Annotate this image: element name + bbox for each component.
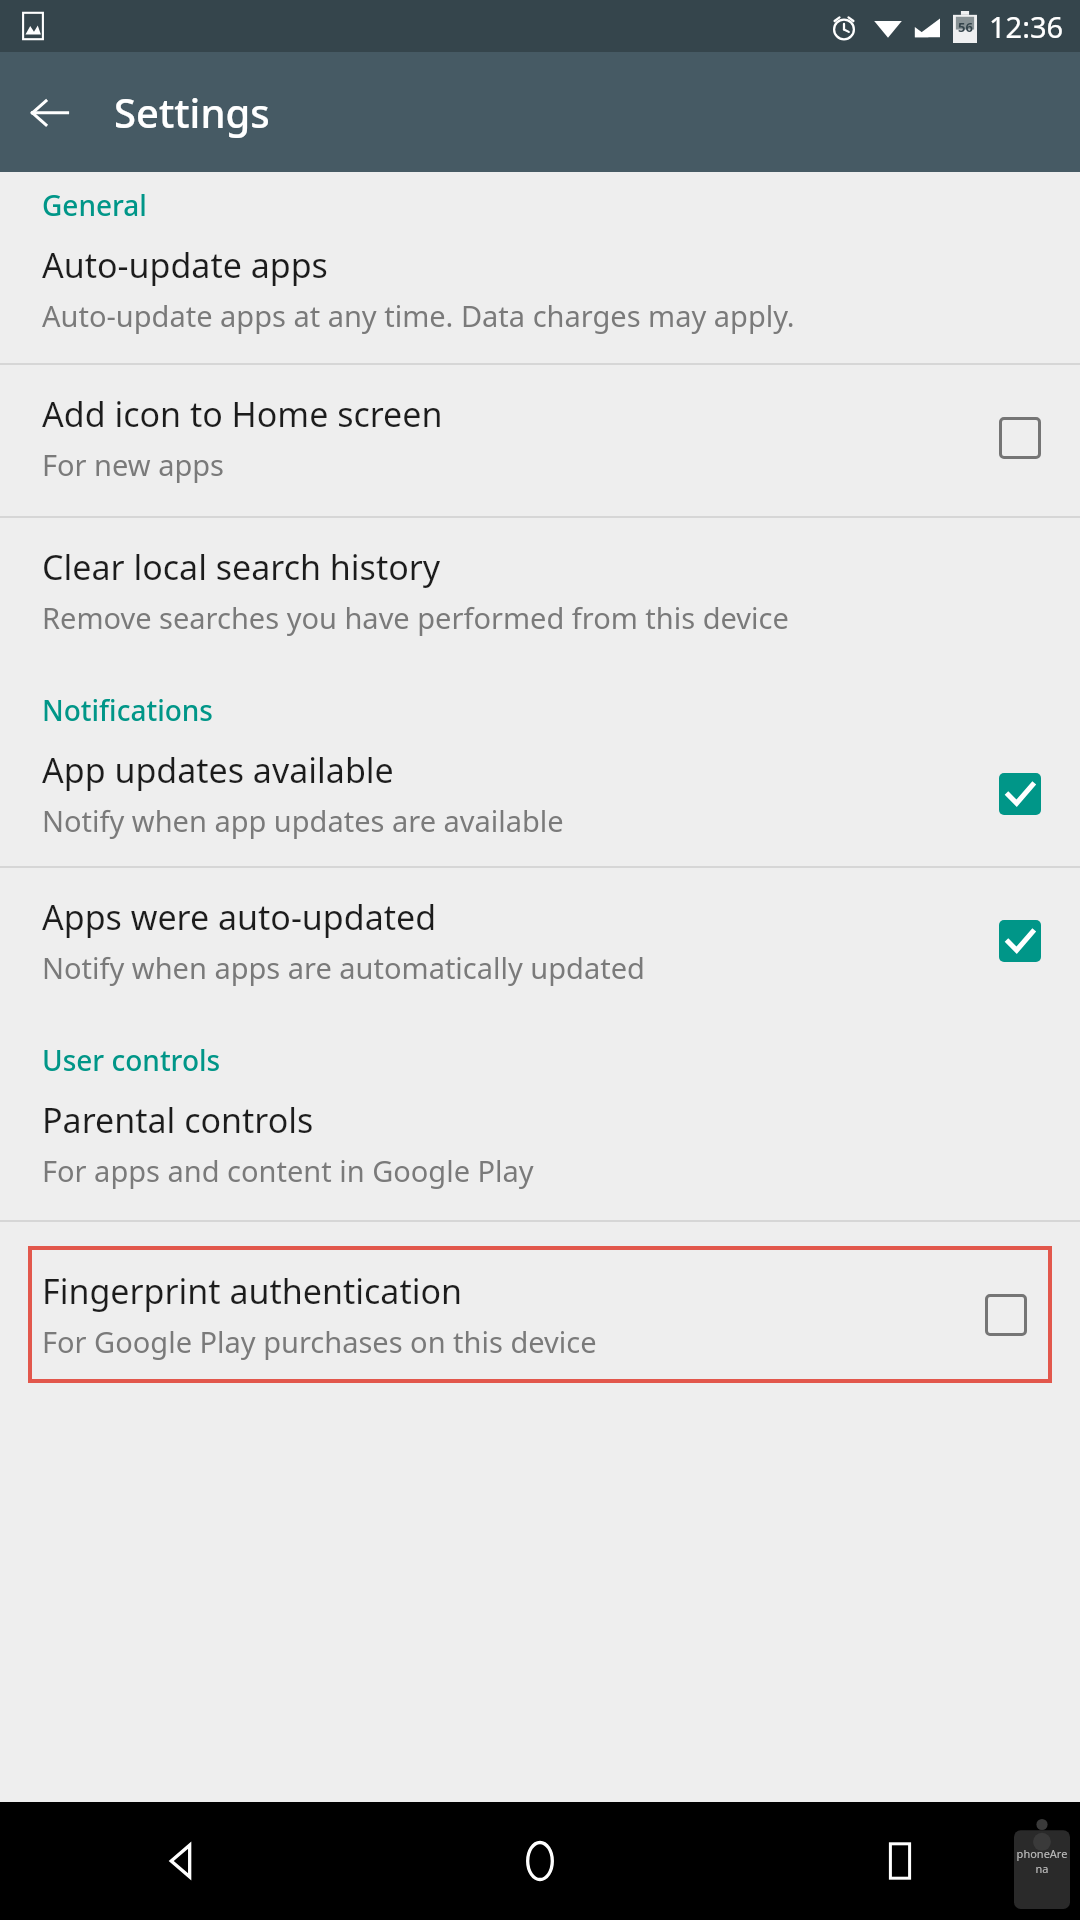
staticText: phoneArena [1014,1846,1070,1876]
staticText: For Google Play purchases on this device [42,1322,597,1361]
button[interactable]: Checked [990,764,1050,824]
staticText: Auto-update apps [42,242,328,288]
button[interactable]: Clear local search history [0,518,1080,667]
staticText: For new apps [42,445,224,484]
button[interactable]: Parental controls [0,1079,1080,1220]
button[interactable]: Fingerprint authentication [28,1246,1052,1383]
button[interactable]: Back [14,76,86,148]
staticText: For apps and content in Google Play [42,1151,534,1190]
staticText: Notify when app updates are available [42,801,564,840]
staticText: Auto-update apps at any time. Data charg… [42,296,795,335]
button[interactable]: Home [360,1802,720,1920]
staticText: Fingerprint authentication [42,1268,463,1314]
button[interactable]: Recent apps [720,1802,1080,1920]
staticText: User controls [42,1041,221,1079]
button[interactable]: App updates available [0,729,1080,866]
staticText: Add icon to Home screen [42,391,443,437]
button[interactable]: Add icon to Home screen [0,365,1080,516]
staticText: Apps were auto-updated [42,894,437,940]
staticText: Notify when apps are automatically updat… [42,948,645,987]
staticText: 56 [958,18,973,36]
staticText: Settings [114,85,270,139]
button[interactable]: Apps were auto-updated [0,868,1080,1017]
staticText: 12:36 [989,7,1064,46]
staticText: Clear local search history [42,544,441,590]
staticText: App updates available [42,747,394,793]
button[interactable]: Unchecked [990,408,1050,468]
staticText: General [42,186,147,224]
button[interactable]: Unchecked [976,1285,1036,1345]
button[interactable]: Back [0,1802,360,1920]
staticText: Remove searches you have performed from … [42,598,789,637]
button[interactable]: Auto-update apps [0,224,1080,363]
button[interactable]: Checked [990,911,1050,971]
staticText: Notifications [42,691,213,729]
staticText: Parental controls [42,1097,314,1143]
